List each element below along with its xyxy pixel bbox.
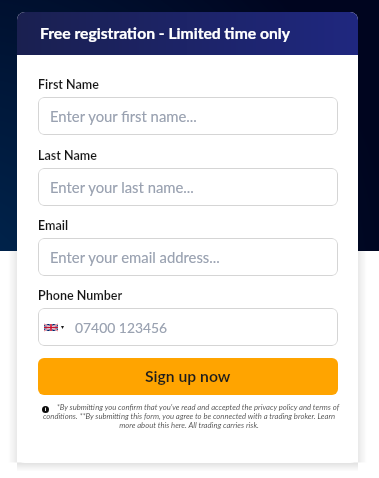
button[interactable]: Enter your email address... [38, 238, 338, 276]
button[interactable]: Sign up now [38, 358, 338, 395]
staticText: Last Name [38, 148, 97, 163]
staticText: Free registration - Limited time only [40, 24, 291, 43]
staticText: Email [38, 218, 69, 233]
staticText: Phone Number [38, 288, 123, 303]
staticText: *By submitting you confirm that you've r… [36, 402, 342, 429]
staticText: Sign up now [145, 367, 231, 386]
staticText: 07400 123456 [75, 319, 168, 336]
other: Information [42, 406, 49, 413]
staticText: Enter your first name... [50, 107, 197, 125]
staticText: Enter your email address... [50, 248, 220, 266]
button[interactable]: 07400 123456 [38, 308, 338, 346]
button[interactable]: Enter your first name... [38, 97, 338, 135]
button[interactable]: Enter your last name... [38, 168, 338, 206]
staticText: Enter your last name... [50, 178, 194, 196]
staticText: First Name [38, 77, 100, 92]
